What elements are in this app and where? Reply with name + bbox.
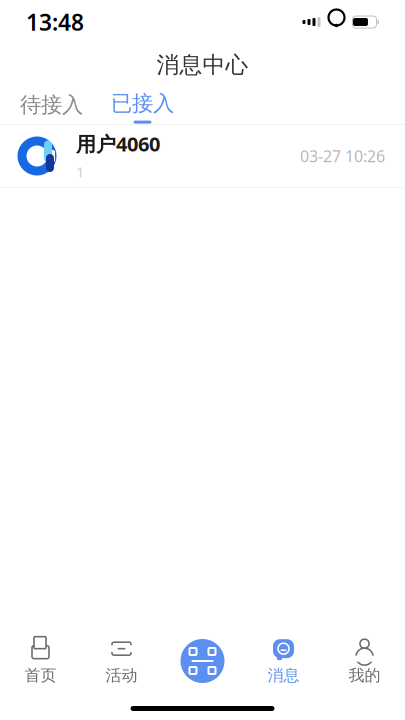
staticText: 用户4060 — [76, 130, 160, 157]
button[interactable]: 扫一扫 — [162, 633, 243, 689]
button[interactable]: 消息 — [243, 633, 324, 689]
staticText: 首页 — [24, 666, 56, 685]
button[interactable]: 首页 — [0, 633, 81, 689]
button[interactable]: 活动 — [81, 633, 162, 689]
staticText: 我的 — [348, 666, 380, 685]
button[interactable]: 已接入 — [105, 86, 180, 124]
staticText: 活动 — [105, 666, 137, 685]
button[interactable]: 用户4060 — [0, 125, 405, 187]
button[interactable]: 待接入 — [14, 88, 89, 122]
staticText: 1 — [76, 162, 84, 181]
staticText: 消息 — [267, 666, 299, 685]
staticText: 13:48 — [26, 7, 84, 37]
staticText: 待接入 — [20, 92, 83, 118]
staticText: 消息中心 — [156, 51, 248, 79]
staticText: 已接入 — [111, 90, 174, 117]
staticText: 03-27 10:26 — [300, 145, 385, 167]
button[interactable]: 我的 — [324, 633, 405, 689]
